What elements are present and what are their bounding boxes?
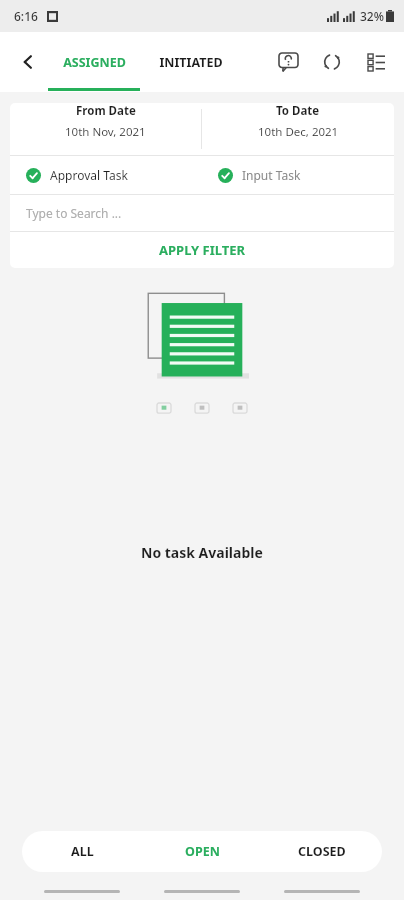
staticText: 10th Nov, 2021 — [65, 124, 146, 140]
staticText: Type to Search ... — [26, 205, 122, 221]
staticText: 32% — [360, 8, 384, 24]
button[interactable]: OPEN — [142, 831, 262, 872]
staticText: ASSIGNED — [63, 54, 126, 71]
staticText: CLOSED — [298, 843, 346, 860]
button[interactable]: Back — [8, 42, 48, 82]
button[interactable]: INITIATED — [145, 32, 237, 92]
button[interactable]: Input Task — [218, 167, 394, 183]
button[interactable]: APPLY FILTER — [10, 232, 394, 268]
staticText: To Date — [276, 103, 320, 119]
staticText: ALL — [71, 843, 94, 860]
staticText: From Date — [76, 103, 136, 119]
staticText: 10th Dec, 2021 — [258, 124, 339, 140]
button[interactable]: Approval Task — [26, 167, 202, 183]
staticText: INITIATED — [159, 54, 223, 71]
button[interactable]: List view — [354, 40, 398, 84]
button[interactable]: Help — [266, 40, 310, 84]
staticText: OPEN — [185, 843, 220, 860]
button[interactable]: CLOSED — [262, 831, 382, 872]
button[interactable]: ASSIGNED — [48, 32, 140, 92]
staticText: Approval Task — [50, 167, 128, 183]
button[interactable]: From Date — [10, 103, 201, 140]
staticText: Input Task — [242, 167, 301, 183]
staticText: No task Available — [141, 543, 263, 562]
button[interactable]: To Date — [202, 103, 394, 140]
button[interactable]: ALL — [22, 831, 142, 872]
staticText: 6:16 — [14, 8, 38, 24]
staticText: APPLY FILTER — [159, 241, 246, 259]
button[interactable]: Refresh — [310, 40, 354, 84]
button[interactable]: Type to Search ... — [10, 195, 394, 231]
